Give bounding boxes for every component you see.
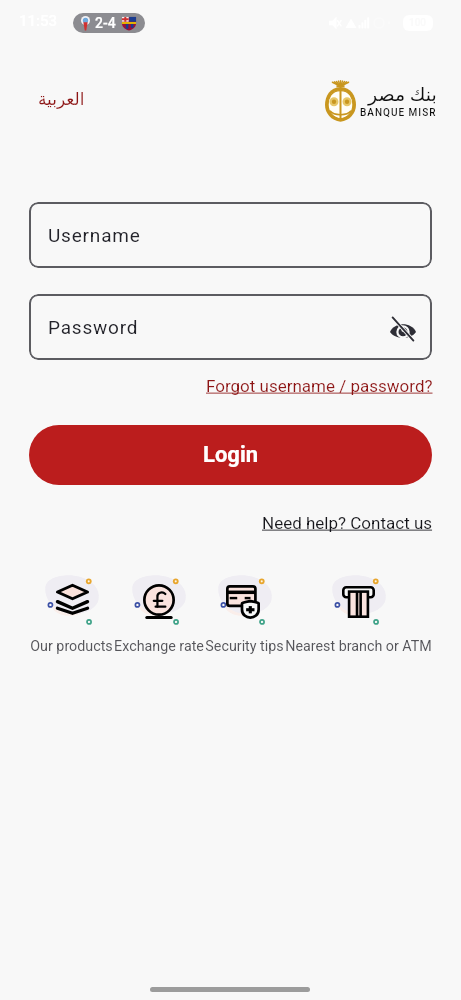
- button[interactable]: Security tips: [205, 572, 284, 655]
- button[interactable]: Nearest branch or ATM: [285, 572, 432, 655]
- staticText: 2-4: [95, 15, 116, 31]
- button[interactable]: Exchange rate: [114, 572, 204, 655]
- button[interactable]: Live score: [73, 13, 145, 33]
- staticText: Security tips: [205, 638, 284, 655]
- button[interactable]: Our products: [30, 572, 113, 655]
- staticText: BANQUE MISR: [360, 107, 437, 119]
- button[interactable]: Forgot username / password?: [206, 376, 433, 396]
- staticText: بنك مصر: [368, 83, 437, 105]
- staticText: Nearest branch or ATM: [285, 638, 432, 655]
- button[interactable]: Show password: [385, 311, 421, 347]
- button[interactable]: Password: [29, 294, 432, 360]
- staticText: Username: [48, 224, 141, 246]
- button[interactable]: Need help? Contact us: [262, 513, 433, 533]
- staticText: Login: [203, 442, 259, 468]
- button[interactable]: Login: [29, 425, 432, 485]
- button[interactable]: Username: [29, 202, 432, 268]
- staticText: Exchange rate: [114, 638, 204, 655]
- staticText: Our products: [30, 638, 113, 655]
- button[interactable]: العربية: [38, 89, 85, 109]
- staticText: Password: [48, 316, 139, 338]
